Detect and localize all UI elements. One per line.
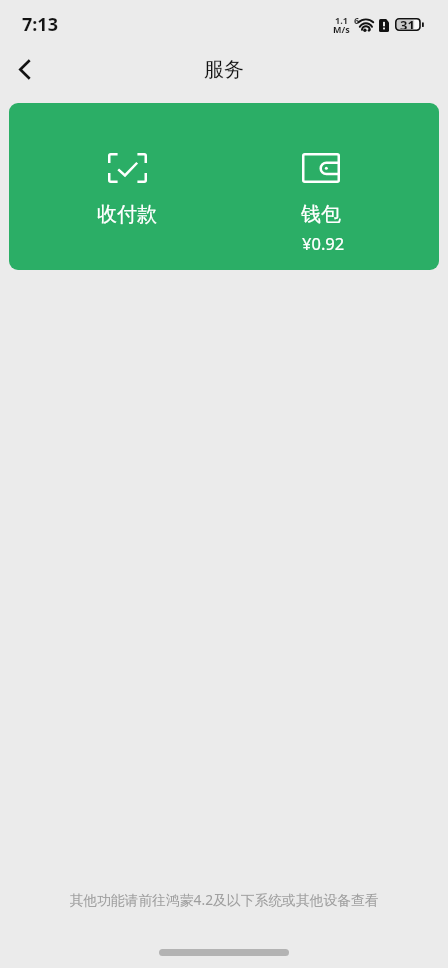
staticText: 31 (400, 16, 415, 29)
staticText: 收付款 (97, 202, 157, 227)
staticText: 服务 (204, 57, 244, 82)
staticText: 6 (354, 14, 360, 26)
staticText: 1.1 (335, 14, 348, 26)
button[interactable]: 钱包 (224, 103, 439, 270)
staticText: ¥0.92 (302, 232, 345, 254)
staticText: 钱包 (301, 202, 341, 227)
button[interactable]: 收付款 (9, 103, 224, 270)
staticText: M/s (333, 23, 350, 35)
staticText: 其他功能请前往鸿蒙4.2及以下系统或其他设备查看 (69, 890, 379, 909)
button[interactable]: Back (1, 45, 49, 93)
staticText: 7:13 (22, 12, 58, 37)
